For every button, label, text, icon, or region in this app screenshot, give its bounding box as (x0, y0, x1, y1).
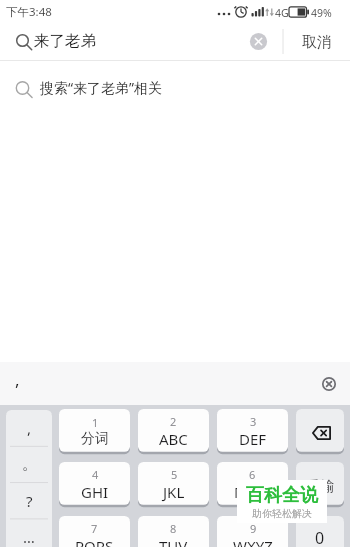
staticText: 9 (250, 521, 257, 536)
button[interactable]: 0 (296, 516, 344, 547)
staticText: 分词 (81, 430, 109, 448)
button[interactable]: 3 (217, 409, 288, 453)
staticText: 6 (249, 467, 256, 482)
staticText: TUV (159, 536, 188, 547)
staticText: 5 (171, 467, 178, 482)
staticText: GHI (81, 482, 109, 502)
button[interactable]: 取消 (284, 25, 350, 60)
staticText: , (27, 418, 32, 438)
button[interactable]: 2 (138, 409, 209, 453)
button[interactable]: 8 (138, 516, 209, 547)
staticText: 2 (170, 414, 177, 429)
staticText: MNO (234, 482, 271, 502)
staticText: 3 (250, 414, 257, 429)
staticText: 重输 (306, 478, 334, 496)
button[interactable]: , (6, 410, 52, 547)
staticText: 4G (275, 6, 289, 20)
button[interactable]: 5 (138, 462, 209, 506)
staticText: 搜索“来了老弟”相关 (40, 78, 163, 97)
button[interactable]: 1 (59, 409, 130, 453)
button[interactable]: 7 (59, 516, 130, 547)
staticText: WXYZ (233, 536, 273, 547)
button[interactable]: 重输 (296, 462, 344, 506)
staticText: 取消 (302, 33, 332, 52)
button[interactable]: 搜索“来了老弟”相关 (0, 61, 350, 115)
staticText: 百科全说 (246, 484, 318, 507)
staticText: DEF (239, 429, 267, 449)
staticText: ABC (159, 429, 188, 449)
staticText: JKL (163, 482, 185, 502)
button[interactable]: 来了老弟 (34, 31, 96, 51)
staticText: , (15, 368, 20, 391)
staticText: 8 (170, 521, 177, 536)
staticText: 下午3:48 (6, 4, 52, 20)
staticText: 4 (92, 467, 99, 482)
staticText: 0 (315, 527, 325, 547)
staticText: PQRS (75, 536, 114, 547)
staticText: 助你轻松解决 (252, 507, 312, 520)
button[interactable] (0, 362, 350, 405)
button[interactable] (296, 409, 344, 453)
button[interactable]: 9 (217, 516, 288, 547)
staticText: 7 (91, 521, 98, 536)
staticText: 1 (92, 415, 99, 430)
staticText: ? (26, 491, 33, 511)
staticText: … (23, 527, 35, 547)
staticText: 49% (311, 6, 332, 20)
staticText: 。 (22, 455, 37, 474)
button[interactable]: 4 (59, 462, 130, 506)
button[interactable]: 6 (217, 462, 288, 506)
